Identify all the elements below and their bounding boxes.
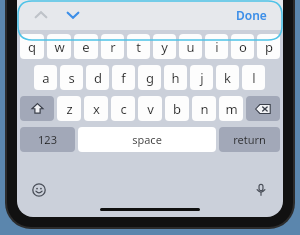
staticText: u (186, 38, 195, 56)
button[interactable]: k (216, 65, 239, 90)
staticText: i (215, 38, 219, 56)
staticText: f (121, 69, 126, 87)
button[interactable]: Done (232, 3, 271, 27)
button[interactable]: z (57, 96, 81, 121)
staticText: m (225, 100, 238, 118)
staticText: l (252, 69, 256, 87)
staticText: o (239, 38, 247, 56)
button[interactable]: x (84, 96, 108, 121)
button[interactable]: Next field (61, 3, 85, 27)
staticText: h (171, 69, 180, 87)
button[interactable]: 123 (20, 127, 75, 152)
button[interactable]: e (74, 34, 98, 59)
button[interactable]: r (101, 34, 124, 59)
button[interactable]: j (190, 65, 213, 90)
button[interactable]: n (192, 96, 216, 121)
staticText: s (68, 69, 75, 87)
button[interactable]: Dictation (249, 178, 273, 202)
button[interactable]: t (127, 34, 150, 59)
button[interactable]: w (47, 34, 71, 59)
staticText: e (82, 38, 90, 56)
staticText: b (173, 100, 181, 118)
button[interactable]: c (111, 96, 135, 121)
staticText: c (120, 100, 127, 118)
staticText: z (66, 100, 73, 118)
staticText: w (54, 38, 65, 56)
button[interactable]: Previous field (29, 3, 53, 27)
button[interactable]: s (60, 65, 83, 90)
button[interactable]: v (138, 96, 162, 121)
button[interactable]: l (242, 65, 265, 90)
staticText: j (200, 69, 204, 87)
staticText: space (132, 132, 162, 147)
button[interactable]: g (138, 65, 161, 90)
button[interactable]: u (179, 34, 202, 59)
staticText: q (28, 38, 36, 56)
button[interactable]: f (112, 65, 135, 90)
button[interactable]: Shift (20, 96, 54, 121)
button[interactable]: return (219, 127, 280, 152)
button[interactable]: p (257, 34, 280, 59)
button[interactable]: q (20, 34, 44, 59)
staticText: d (94, 69, 102, 87)
staticText: v (147, 100, 154, 118)
staticText: k (224, 69, 231, 87)
button[interactable]: a (34, 65, 57, 90)
button[interactable]: m (219, 96, 243, 121)
button[interactable]: space (78, 127, 216, 152)
button[interactable]: h (164, 65, 187, 90)
staticText: t (136, 38, 141, 56)
staticText: g (146, 69, 154, 87)
button[interactable]: d (86, 65, 109, 90)
staticText: r (110, 38, 116, 56)
button[interactable]: i (205, 34, 228, 59)
button[interactable]: b (165, 96, 189, 121)
staticText: a (42, 69, 50, 87)
button[interactable]: Emoji (27, 178, 51, 202)
staticText: return (233, 132, 266, 147)
staticText: 123 (38, 132, 57, 147)
button[interactable]: o (231, 34, 254, 59)
staticText: Done (236, 7, 267, 23)
button[interactable]: Backspace (246, 96, 280, 121)
button[interactable]: y (153, 34, 176, 59)
staticText: p (265, 38, 273, 56)
staticText: n (200, 100, 209, 118)
staticText: y (161, 38, 168, 56)
staticText: x (93, 100, 100, 118)
